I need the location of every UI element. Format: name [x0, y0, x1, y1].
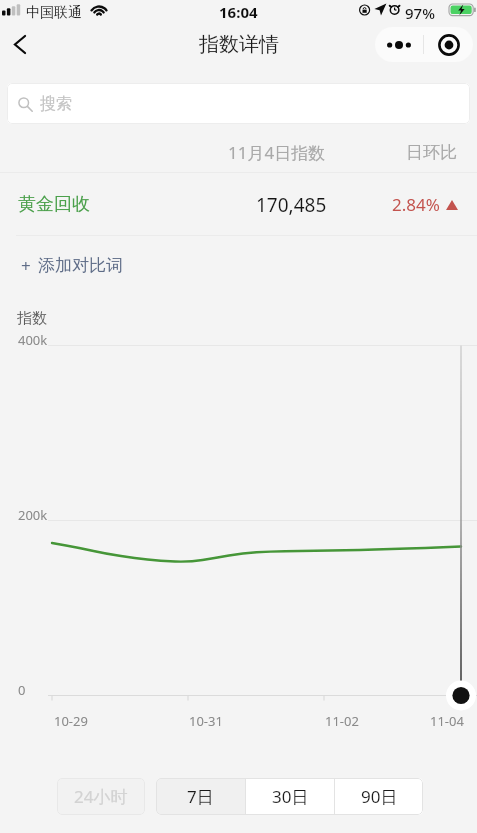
button[interactable]: 黄金回收 — [0, 173, 477, 236]
staticText: 搜索 — [40, 94, 72, 114]
staticText: 2.84% — [392, 193, 440, 216]
staticText: 0 — [18, 681, 26, 699]
staticText: 7日 — [187, 785, 214, 808]
button[interactable]: 30日 — [246, 778, 334, 815]
button[interactable]: 关闭 — [424, 27, 473, 62]
staticText: 170,485 — [256, 192, 327, 218]
staticText: 黄金回收 — [18, 193, 90, 216]
button[interactable]: + — [0, 236, 477, 294]
staticText: 90日 — [361, 785, 398, 808]
staticText: 11月4日指数 — [228, 141, 326, 164]
staticText: 添加对比词 — [38, 255, 123, 276]
staticText: 11-02 — [325, 712, 359, 730]
staticText: 指数详情 — [199, 32, 279, 57]
staticText: 30日 — [272, 785, 309, 808]
button[interactable]: 更多 — [375, 27, 423, 62]
button[interactable]: 90日 — [335, 778, 423, 815]
staticText: 16:04 — [219, 2, 258, 22]
staticText: 中国联通 — [26, 4, 82, 22]
button[interactable]: 搜索 — [7, 83, 470, 124]
staticText: 日环比 — [406, 142, 457, 163]
staticText: 10-31 — [189, 712, 223, 730]
staticText: 97% — [405, 3, 435, 23]
button[interactable]: 返回 — [0, 26, 40, 62]
button[interactable]: 7日 — [156, 778, 245, 815]
staticText: 11-04 — [430, 712, 464, 730]
staticText: + — [21, 254, 31, 277]
staticText: 24小时 — [74, 785, 128, 808]
staticText: 指数 — [17, 309, 47, 328]
staticText: 400k — [18, 331, 48, 349]
staticText: 200k — [18, 506, 48, 524]
button[interactable]: 24小时 — [57, 778, 145, 815]
staticText: 10-29 — [54, 712, 88, 730]
